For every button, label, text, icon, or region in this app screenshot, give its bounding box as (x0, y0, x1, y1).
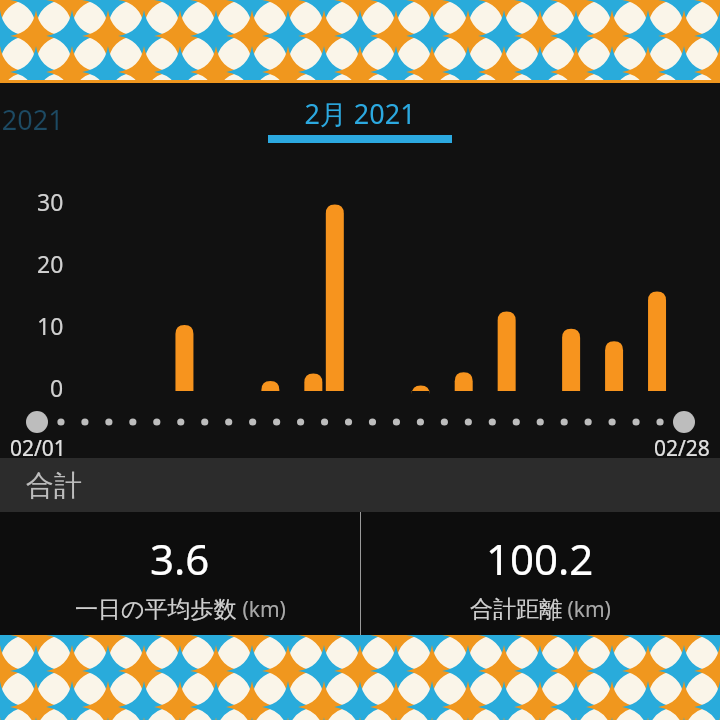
staticText: 合計 (26, 468, 82, 503)
button[interactable]: 1月 2021 (0, 101, 68, 138)
button[interactable]: 3.6 (0, 512, 360, 635)
staticText: 3.6 (150, 530, 210, 587)
staticText: 02/28 (654, 434, 710, 463)
staticText: 2月 2021 (304, 95, 416, 132)
staticText: 30 (37, 186, 64, 217)
staticText: 02/01 (10, 434, 66, 463)
staticText: 0 (50, 372, 64, 403)
staticText: (km) (237, 595, 286, 624)
staticText: 合計距離 (470, 595, 562, 624)
staticText: (km) (562, 595, 611, 624)
button[interactable]: 2月 2021 (300, 95, 420, 132)
button[interactable]: 100.2 (360, 512, 720, 635)
staticText: 一日の平均歩数 (75, 595, 237, 624)
staticText: 100.2 (486, 530, 594, 587)
button[interactable]: 合計 (0, 458, 720, 512)
staticText: 1月 2021 (0, 101, 64, 138)
staticText: 10 (37, 310, 64, 341)
staticText: 20 (37, 248, 64, 279)
